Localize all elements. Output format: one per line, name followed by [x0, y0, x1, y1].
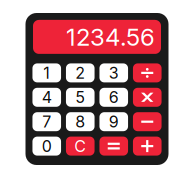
- staticText: 4: [42, 88, 52, 107]
- button[interactable]: 4: [32, 88, 61, 107]
- staticText: 1234.56: [66, 22, 155, 51]
- staticText: 5: [75, 88, 85, 107]
- button[interactable]: Minus: [133, 112, 161, 131]
- staticText: 9: [109, 112, 119, 131]
- button[interactable]: 7: [32, 112, 61, 131]
- button[interactable]: 9: [99, 112, 128, 131]
- staticText: C: [74, 136, 86, 156]
- staticText: 1: [43, 63, 50, 83]
- button[interactable]: 6: [99, 88, 128, 107]
- staticText: 6: [109, 88, 119, 107]
- button[interactable]: 3: [99, 63, 128, 82]
- button[interactable]: Equals: [99, 137, 128, 156]
- button[interactable]: 0: [32, 137, 61, 156]
- button[interactable]: Divide: [133, 63, 161, 82]
- button[interactable]: 2: [66, 63, 95, 82]
- button[interactable]: 8: [66, 112, 95, 131]
- staticText: 3: [109, 63, 119, 83]
- staticText: 7: [42, 112, 51, 131]
- button[interactable]: C: [66, 137, 95, 156]
- button[interactable]: 5: [66, 88, 95, 107]
- button[interactable]: Plus: [133, 137, 161, 156]
- button[interactable]: Multiply: [133, 88, 161, 107]
- button[interactable]: 1: [32, 63, 61, 82]
- staticText: 2: [75, 63, 85, 83]
- staticText: 0: [42, 136, 52, 156]
- staticText: 8: [75, 112, 85, 131]
